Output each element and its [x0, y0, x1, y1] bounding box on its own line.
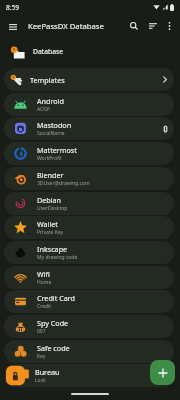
staticText: Android — [37, 96, 64, 106]
staticText: AOSP — [37, 106, 50, 113]
button[interactable]: Bureau — [4, 364, 174, 387]
staticText: UserDesktop — [37, 205, 68, 212]
staticText: Credit — [37, 303, 52, 310]
button[interactable]: Credit Card — [4, 290, 174, 313]
staticText: Private Key — [37, 229, 64, 236]
button[interactable]: Blender — [4, 167, 174, 190]
staticText: Mastodon — [37, 120, 72, 130]
staticText: SocialName — [37, 130, 65, 137]
staticText: Mattermost — [37, 145, 77, 155]
staticText: Spy Code — [37, 318, 69, 328]
button[interactable]: Mattermost — [4, 142, 174, 165]
staticText: Blender — [37, 170, 64, 180]
button[interactable]: Wallet — [4, 216, 174, 239]
button[interactable]: Spy Code — [4, 315, 174, 338]
button[interactable]: Inkscape — [4, 241, 174, 264]
staticText: Lock — [35, 377, 46, 384]
button[interactable]: Mastodon — [4, 117, 174, 140]
button[interactable]: Debian — [4, 192, 174, 215]
staticText: 3DUser@drawing.com — [37, 180, 90, 187]
staticText: Key — [37, 353, 46, 360]
staticText: 8:59 — [6, 3, 19, 12]
button[interactable]: Wifi — [4, 266, 174, 289]
staticText: Inkscape — [37, 244, 68, 254]
button[interactable]: More options — [162, 16, 177, 36]
staticText: Wifi — [37, 269, 50, 279]
staticText: Templates — [30, 75, 159, 85]
staticText: Safe code — [37, 343, 70, 353]
staticText: Debian — [37, 195, 62, 205]
button[interactable]: Android — [4, 93, 174, 116]
button[interactable]: Navigation menu — [4, 18, 21, 35]
staticText: Credit Card — [37, 293, 75, 303]
staticText: WorkProfil — [37, 155, 62, 162]
button[interactable]: Add entry — [150, 360, 175, 385]
button[interactable]: Safe code — [4, 340, 174, 363]
staticText: KeePassDX Database — [28, 21, 124, 31]
button[interactable]: Sort — [143, 16, 162, 36]
staticText: Wallet — [37, 219, 58, 229]
button[interactable]: Templates — [4, 68, 174, 91]
staticText: Home — [37, 279, 52, 286]
button[interactable]: Search — [124, 16, 143, 36]
staticText: My drawing code — [37, 254, 78, 261]
staticText: Bureau — [35, 367, 60, 377]
staticText: 007 — [37, 328, 46, 335]
staticText: Database — [33, 47, 64, 56]
